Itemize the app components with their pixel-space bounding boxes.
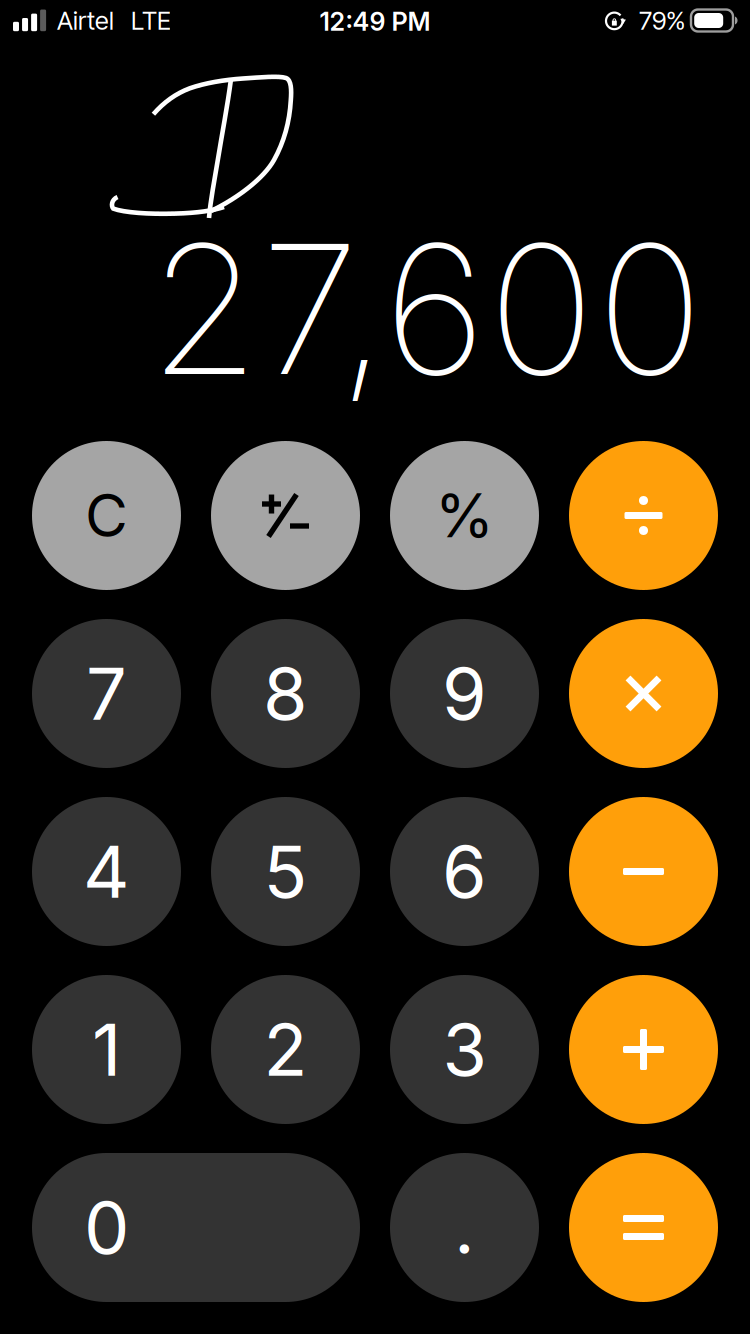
button[interactable]: Divide <box>569 441 718 590</box>
staticText: 3 <box>442 1006 486 1093</box>
button[interactable]: 7 <box>32 619 181 768</box>
button[interactable]: Add <box>569 975 718 1124</box>
button[interactable]: % <box>390 441 539 590</box>
staticText: C <box>85 480 128 551</box>
staticText: 7 <box>86 650 127 737</box>
button[interactable]: Plus or minus <box>211 441 360 590</box>
staticText: 8 <box>263 650 308 737</box>
button[interactable]: 9 <box>390 619 539 768</box>
button[interactable]: 2 <box>211 975 360 1124</box>
staticText: 2 <box>263 1006 307 1093</box>
staticText: % <box>435 479 494 552</box>
staticText: LTE <box>131 5 171 36</box>
button[interactable]: Multiply <box>569 619 718 768</box>
button[interactable]: C <box>32 441 181 590</box>
button[interactable]: 4 <box>32 797 181 946</box>
staticText: 27,600 <box>150 201 702 417</box>
staticText: 1 <box>92 1006 121 1093</box>
button[interactable]: Equals <box>569 1153 718 1302</box>
button[interactable]: . <box>390 1153 539 1302</box>
button[interactable]: 8 <box>211 619 360 768</box>
button[interactable]: 1 <box>32 975 181 1124</box>
staticText: 6 <box>442 828 487 915</box>
button[interactable]: 6 <box>390 797 539 946</box>
staticText: 9 <box>442 650 487 737</box>
staticText: 79% <box>639 5 685 36</box>
button[interactable]: 3 <box>390 975 539 1124</box>
button[interactable]: Subtract <box>569 797 718 946</box>
button[interactable]: 5 <box>211 797 360 946</box>
button[interactable]: 0 <box>32 1153 360 1302</box>
staticText: 12:49 PM <box>319 6 430 37</box>
staticText: 5 <box>263 828 307 915</box>
staticText: 0 <box>84 1184 129 1271</box>
staticText: 4 <box>83 828 130 915</box>
staticText: . <box>454 1184 475 1271</box>
staticText: Airtel <box>57 5 114 36</box>
